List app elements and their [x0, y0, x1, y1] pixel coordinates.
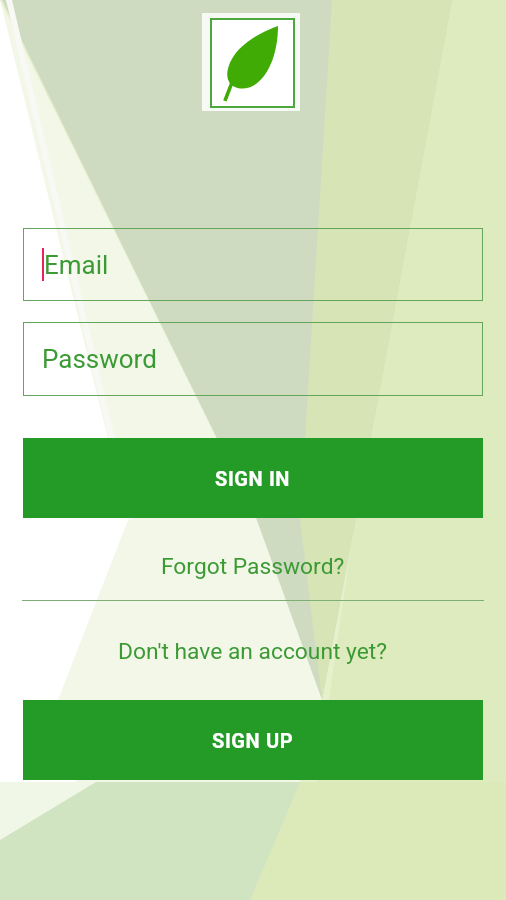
button[interactable]: SIGN IN	[23, 438, 483, 518]
staticText: Don't have an account yet?	[118, 638, 388, 665]
button[interactable]: SIGN UP	[23, 700, 483, 780]
button[interactable]: Email	[23, 228, 483, 301]
button[interactable]: Forgot Password?	[0, 545, 506, 587]
staticText: Email	[44, 250, 109, 280]
button[interactable]: Password	[23, 322, 483, 396]
staticText: Password	[42, 344, 157, 374]
staticText: SIGN IN	[215, 467, 291, 490]
staticText: Forgot Password?	[161, 553, 345, 580]
staticText: SIGN UP	[212, 729, 294, 752]
